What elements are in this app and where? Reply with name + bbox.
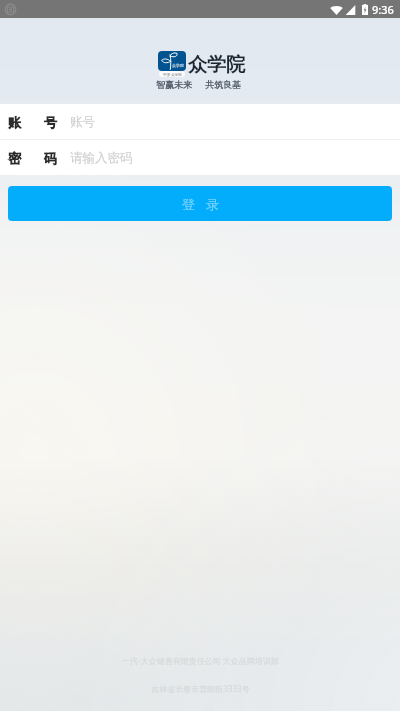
staticText: 账 [8,114,21,130]
staticText: 码 [44,150,57,166]
staticText: 众学院 [172,63,184,68]
staticText: 众学院 [188,53,245,77]
staticText: 9:36 [372,2,394,17]
staticText: 一汽-大众销售有限责任公司 大众品牌培训部 [122,655,279,666]
button[interactable]: 密 [0,140,400,175]
staticText: 吉林省长春市普阳街3333号 [151,683,250,694]
staticText: 请输入密码 [70,150,133,166]
other: Screen capture [4,3,17,16]
staticText: 号 [44,114,57,130]
staticText: 智赢未来 [156,79,192,90]
staticText: 账号 [70,114,95,130]
staticText: 密 [8,150,21,166]
staticText: 登 [182,196,195,212]
staticText: 中国·众学院 [163,72,182,77]
staticText: 录 [206,196,219,212]
staticText: 共筑良基 [205,79,241,90]
button[interactable]: 账 [0,104,400,139]
button[interactable]: 登 [8,186,392,221]
